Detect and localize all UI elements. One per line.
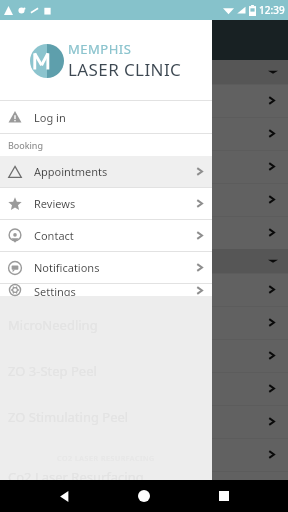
staticText: Notifications [34,260,195,275]
staticText: Booking [8,139,43,151]
staticText: LASER CLINIC [68,58,182,81]
staticText: Reviews [34,196,195,211]
staticText: MEMPHIS [68,40,132,58]
staticText: Log in [34,110,204,125]
staticText: MicroNeedling [8,316,98,334]
button[interactable]: Home [128,480,160,512]
button[interactable]: Contact [0,220,212,251]
button[interactable]: Back [48,480,80,512]
button[interactable]: Appointments [0,156,212,187]
staticText: ZO Stimulating Peel [8,408,129,426]
button[interactable]: Notifications [0,252,212,283]
staticText: Contact [34,228,195,243]
button[interactable]: Recents [208,480,240,512]
button[interactable]: Reviews [0,188,212,219]
button[interactable]: Log in [0,101,212,133]
button[interactable]: Settings [0,284,212,296]
staticText: 12:39 [259,3,285,17]
staticText: Co2 Laser Resurfacing [8,468,144,480]
staticText: ZO 3-Step Peel [8,362,97,380]
staticText: Appointments [34,164,195,179]
staticText: Settings [34,284,195,296]
